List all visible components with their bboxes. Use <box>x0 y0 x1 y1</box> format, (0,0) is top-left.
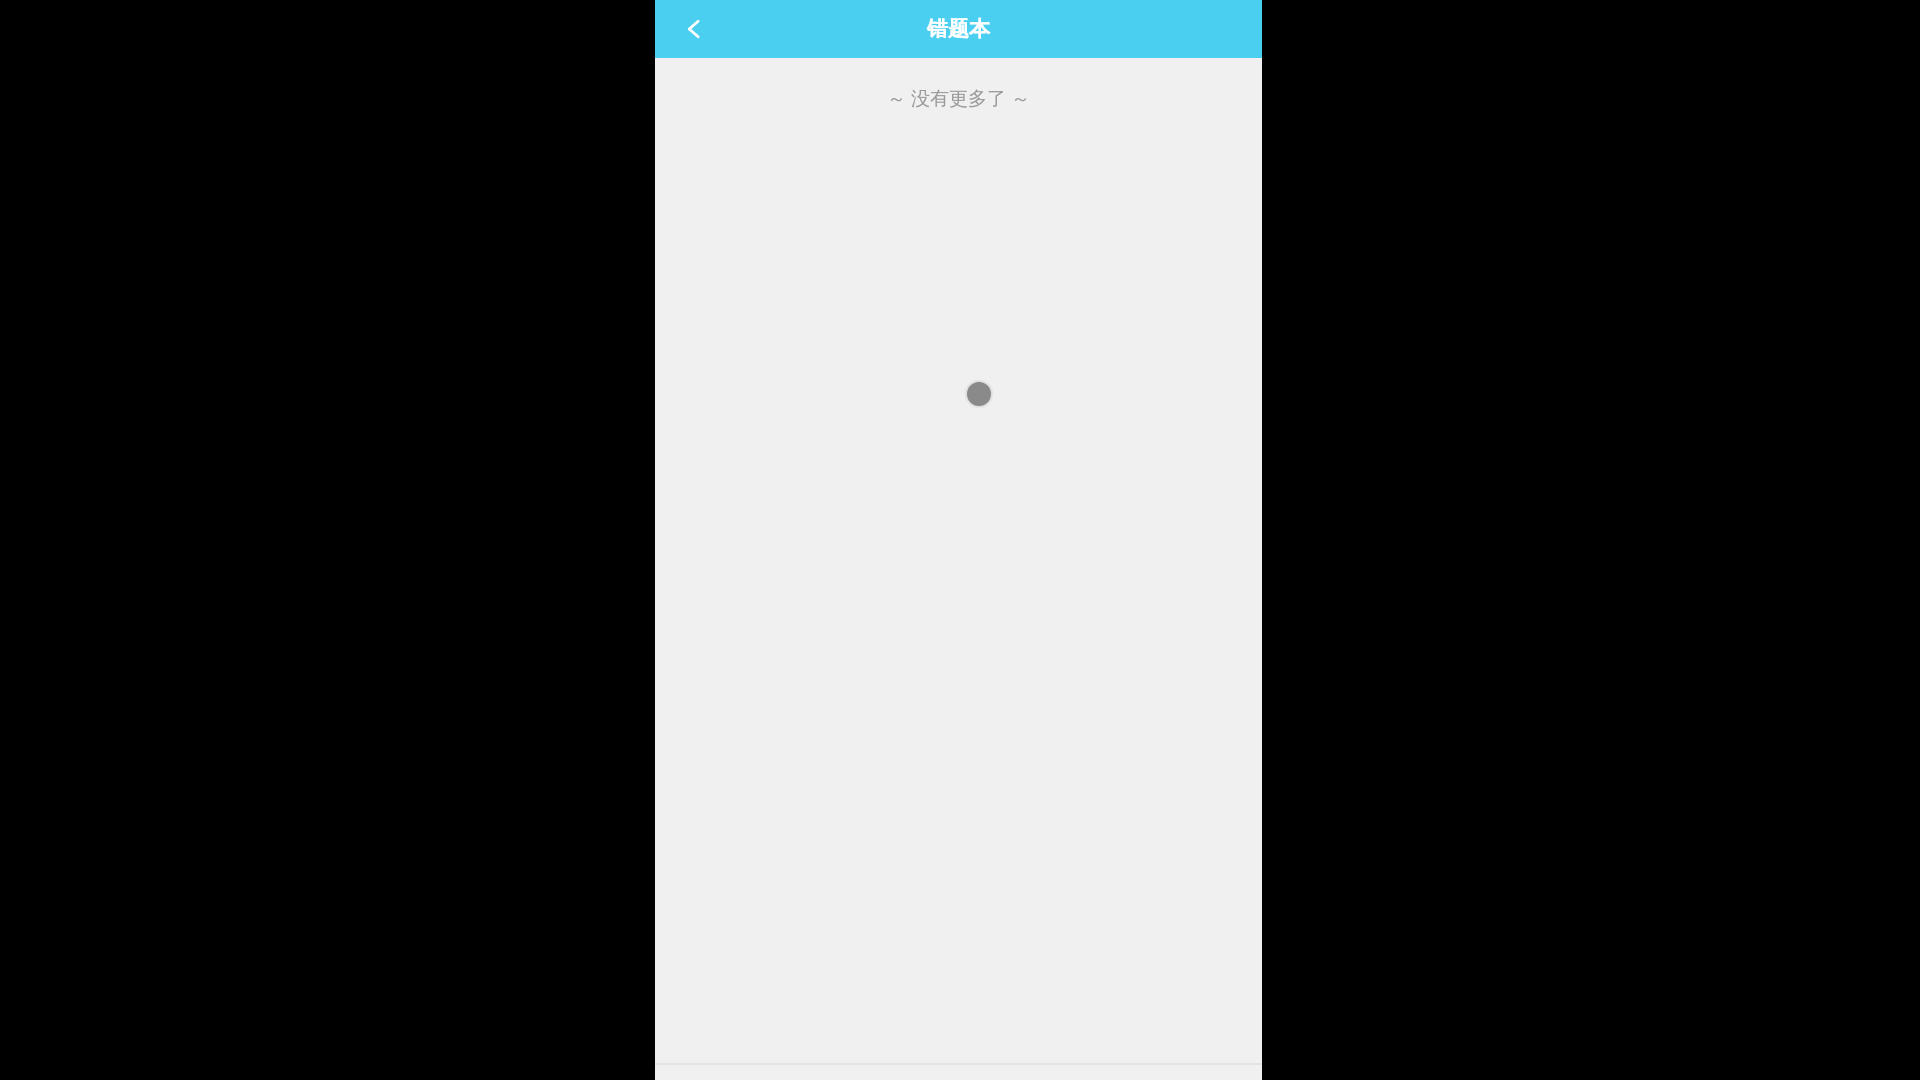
button[interactable]: Back <box>669 0 721 58</box>
staticText: ～ 没有更多了 ～ <box>887 85 1030 111</box>
staticText: 错题本 <box>927 16 990 42</box>
